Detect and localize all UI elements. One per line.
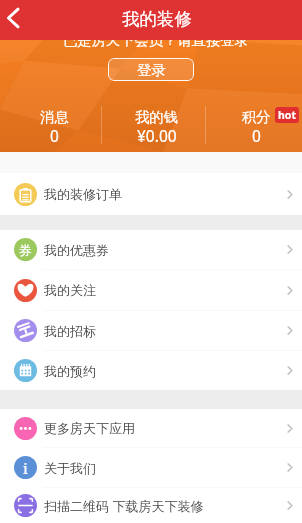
staticText: 积分	[242, 108, 271, 126]
button[interactable]: 我的预约	[0, 351, 302, 390]
staticText: 我的预约	[44, 363, 96, 379]
button[interactable]: 我的关注	[0, 270, 302, 310]
button[interactable]: 消息	[4, 104, 105, 152]
staticText: 关于我们	[44, 460, 96, 476]
button[interactable]: 我的装修订单	[0, 173, 302, 215]
staticText: 我的装修订单	[44, 186, 122, 202]
button[interactable]: 积分	[209, 104, 302, 152]
button[interactable]: 登录	[108, 58, 194, 81]
staticText: 我的优惠券	[44, 242, 109, 258]
button[interactable]: 我的招标	[0, 311, 302, 350]
staticText: 消息	[40, 108, 69, 126]
button[interactable]: 我的钱	[105, 104, 208, 152]
staticText: 我的招标	[44, 323, 96, 339]
button[interactable]: 券	[0, 230, 302, 269]
staticText: ¥0.00	[137, 125, 177, 146]
staticText: 已是房天下会员？请直接登录	[63, 31, 249, 49]
staticText: 我的装修	[122, 8, 192, 30]
button[interactable]: i	[0, 448, 302, 487]
staticText: 券	[19, 242, 32, 258]
button[interactable]: 扫描二维码 下载房天下装修	[0, 488, 302, 523]
button[interactable]: 更多房天下应用	[0, 409, 302, 447]
staticText: hot	[278, 108, 296, 122]
staticText: i	[23, 458, 28, 478]
staticText: 登录	[137, 61, 166, 79]
staticText: 0	[50, 125, 59, 146]
staticText: 我的钱	[135, 108, 178, 126]
staticText: 我的关注	[44, 282, 96, 298]
staticText: 更多房天下应用	[44, 420, 135, 436]
button[interactable]: Back	[0, 0, 28, 40]
staticText: 0	[252, 125, 261, 146]
staticText: 扫描二维码 下载房天下装修	[44, 497, 204, 515]
